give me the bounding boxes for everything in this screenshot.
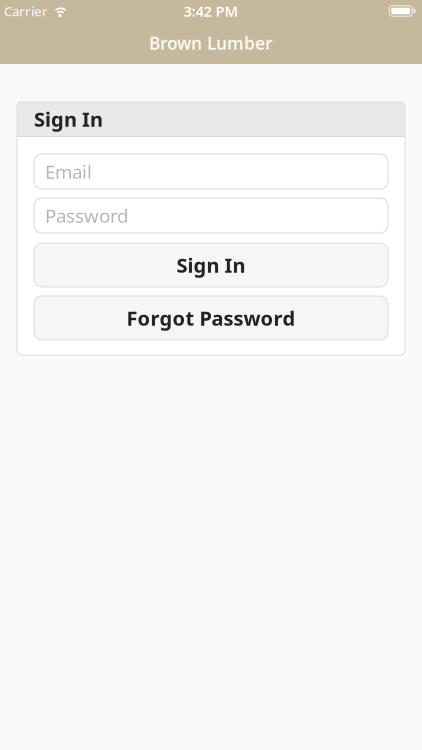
- staticText: Carrier: [4, 2, 48, 20]
- staticText: Brown Lumber: [149, 31, 273, 54]
- button[interactable]: Forgot Password: [34, 296, 388, 340]
- staticText: Sign In: [34, 106, 103, 132]
- staticText: Password: [45, 203, 128, 228]
- button[interactable]: Email text field: [34, 154, 388, 189]
- staticText: 3:42 PM: [183, 1, 238, 21]
- button[interactable]: Password text field: [34, 198, 388, 233]
- staticText: Sign In: [176, 252, 245, 278]
- staticText: Email: [45, 159, 92, 184]
- button[interactable]: Sign In: [34, 243, 388, 287]
- staticText: Forgot Password: [126, 305, 295, 331]
